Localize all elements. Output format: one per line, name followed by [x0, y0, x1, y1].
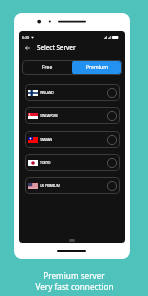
- button[interactable]: SINGAPORE: [25, 107, 120, 124]
- staticText: Very fast connection: [35, 281, 114, 292]
- button[interactable]: US PREMIUM: [25, 177, 120, 194]
- staticText: US PREMIUM: [40, 183, 60, 188]
- button[interactable]: Back: [22, 43, 32, 53]
- staticText: Premium: [86, 64, 108, 71]
- button[interactable]: TAIWAN: [25, 131, 120, 148]
- staticText: FINLAND: [40, 90, 54, 95]
- button[interactable]: FINLAND: [25, 84, 120, 101]
- button[interactable]: Free: [22, 60, 72, 75]
- staticText: Select Server: [37, 43, 76, 52]
- staticText: 6:30: [22, 35, 30, 40]
- staticText: TAIWAN: [40, 137, 52, 142]
- staticText: Premium server: [43, 270, 105, 281]
- button[interactable]: TOKYO: [25, 154, 120, 171]
- staticText: Free: [42, 64, 53, 71]
- staticText: SINGAPORE: [40, 113, 58, 118]
- staticText: TOKYO: [40, 160, 51, 165]
- button[interactable]: Premium: [72, 60, 122, 75]
